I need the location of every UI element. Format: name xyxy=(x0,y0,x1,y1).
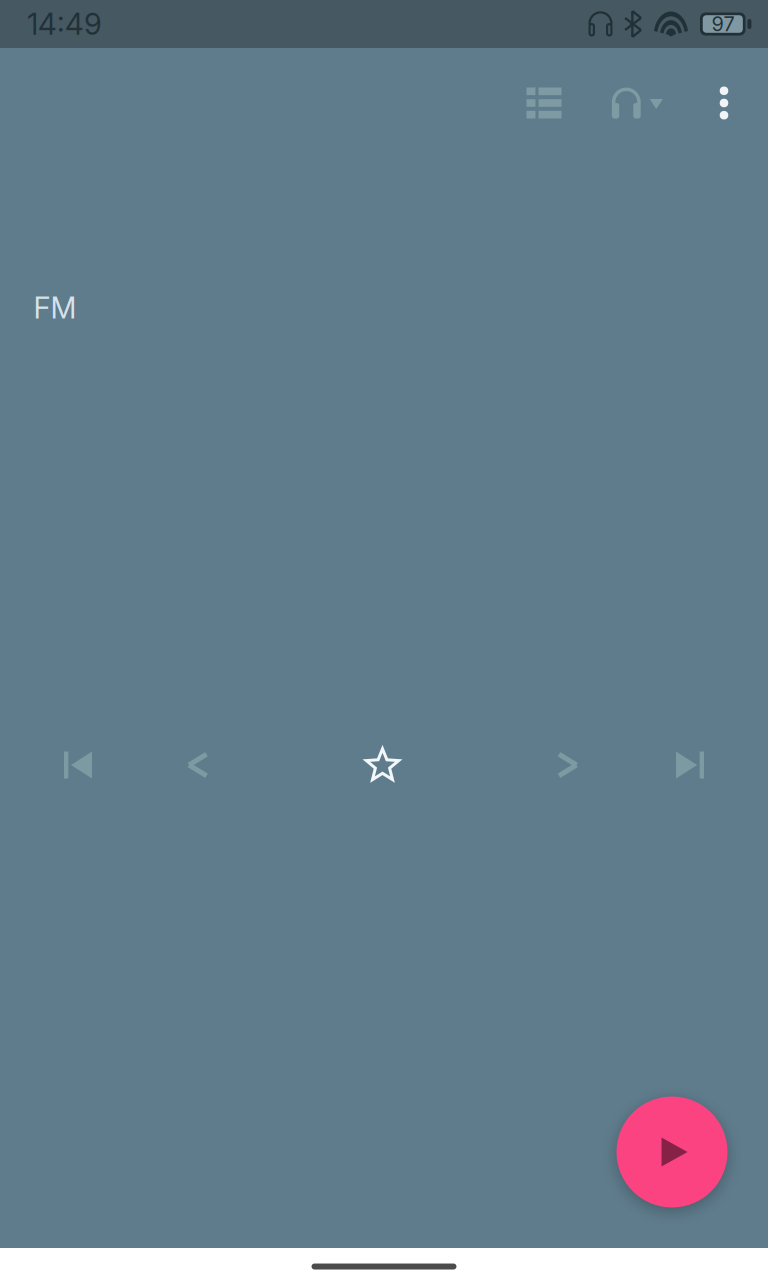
button[interactable]: Previous station xyxy=(36,723,120,807)
staticText: 97 xyxy=(711,12,734,36)
staticText: 14:49 xyxy=(27,6,102,42)
staticText: FM xyxy=(33,290,76,325)
button[interactable]: Add to favourites xyxy=(340,723,424,807)
button[interactable]: Next station xyxy=(648,723,732,807)
button[interactable]: Audio output xyxy=(585,48,689,158)
button[interactable]: More options xyxy=(684,48,764,158)
button[interactable]: Play xyxy=(616,1096,727,1207)
button[interactable]: Station list xyxy=(500,48,588,158)
button[interactable]: Seek up xyxy=(524,723,608,807)
button[interactable]: Seek down xyxy=(157,723,241,807)
